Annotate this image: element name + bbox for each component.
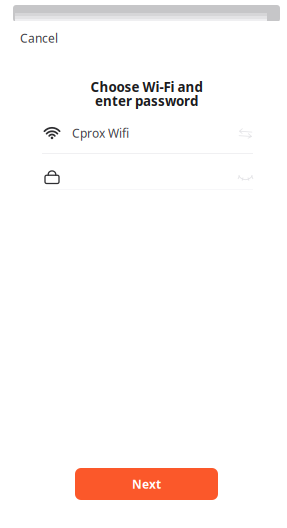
staticText: Next [132, 476, 161, 492]
staticText: enter password [95, 92, 198, 110]
staticText: Cancel [20, 30, 58, 46]
button[interactable]: Next [75, 468, 218, 500]
button[interactable]: Cprox Wifi [0, 121, 287, 145]
staticText: Cprox Wifi [72, 125, 129, 141]
button[interactable]: Cancel [0, 28, 80, 48]
staticText: Choose Wi-Fi and [90, 78, 202, 96]
button[interactable] [0, 167, 287, 185]
